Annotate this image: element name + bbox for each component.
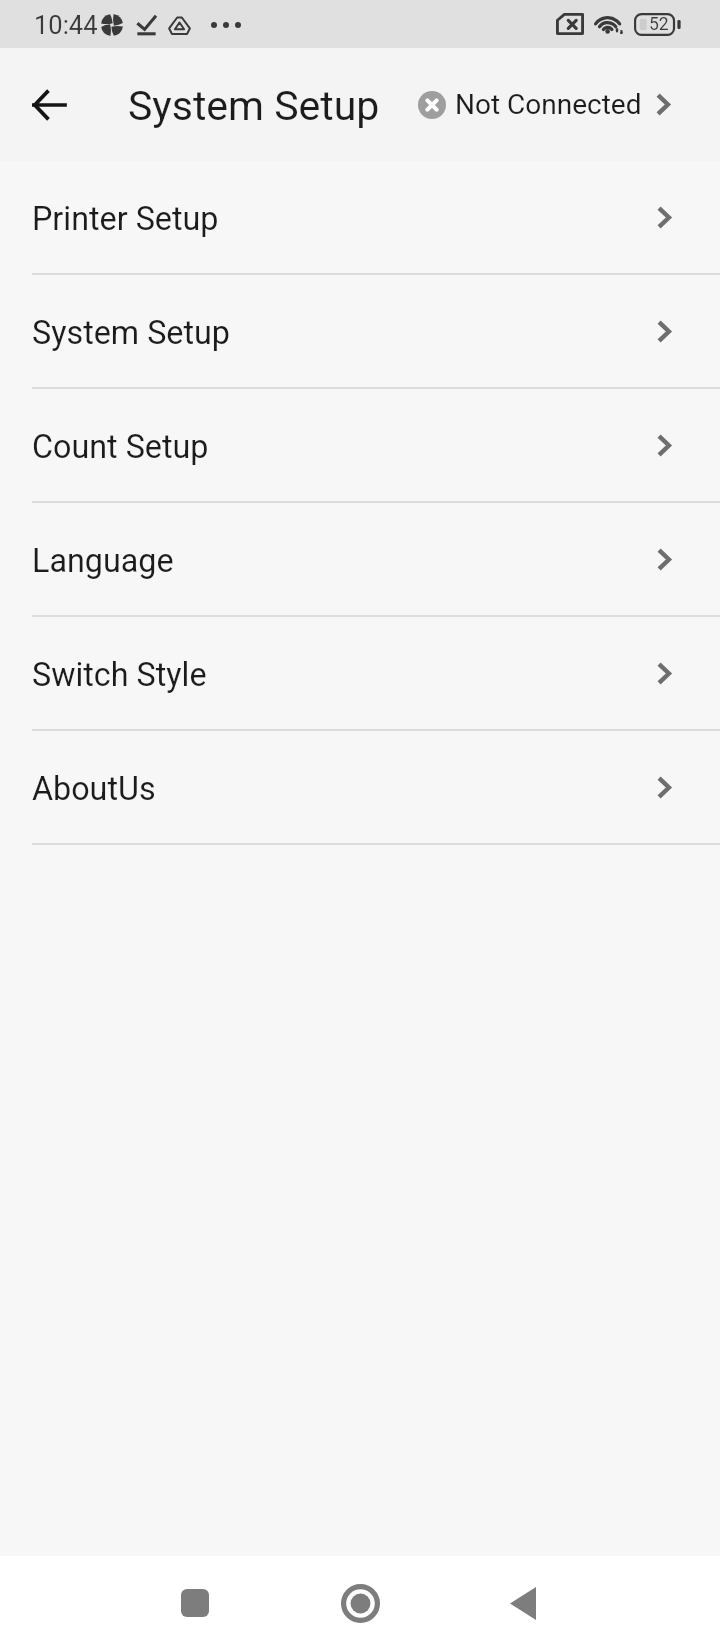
button[interactable]: Count Setup [0, 389, 720, 503]
button[interactable]: Printer Setup [0, 161, 720, 275]
button[interactable]: Back [14, 71, 82, 139]
staticText: System Setup [32, 314, 230, 352]
staticText: Count Setup [32, 428, 209, 466]
button[interactable]: Recent apps [155, 1563, 235, 1643]
staticText: Language [32, 542, 174, 580]
staticText: Not Connected [455, 88, 642, 121]
button[interactable]: Switch Style [0, 617, 720, 731]
button[interactable]: Home [320, 1563, 400, 1643]
button[interactable]: Not Connected [418, 88, 671, 121]
staticText: Printer Setup [32, 200, 219, 238]
button[interactable]: AboutUs [0, 731, 720, 845]
staticText: 52 [649, 14, 669, 35]
button[interactable]: Language [0, 503, 720, 617]
button[interactable]: Back [483, 1563, 563, 1643]
staticText: AboutUs [32, 770, 156, 808]
button[interactable]: System Setup [0, 275, 720, 389]
staticText: System Setup [128, 82, 380, 130]
staticText: Switch Style [32, 656, 207, 694]
staticText: 10:44 [34, 10, 98, 40]
